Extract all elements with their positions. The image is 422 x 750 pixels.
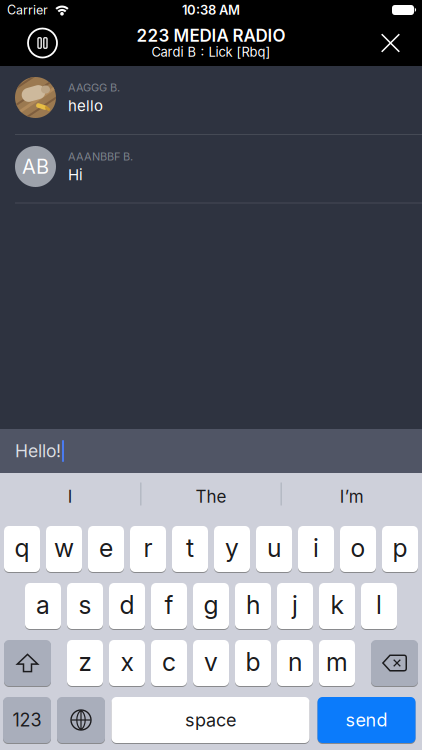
staticText: z [78,647,91,677]
staticText: I’m [340,486,364,507]
staticText: o [350,533,365,563]
button[interactable] [57,696,105,743]
staticText: e [99,533,113,563]
staticText: I [68,486,73,507]
button[interactable]: c [151,639,187,686]
button[interactable]: I [0,471,140,516]
button[interactable] [4,639,51,686]
button[interactable]: send [317,696,415,743]
staticText: Hi [68,166,83,184]
button[interactable]: t [172,525,208,572]
staticText: q [14,533,29,563]
button[interactable]: I’m [282,471,422,516]
button[interactable] [28,28,57,57]
button[interactable]: space [111,696,309,743]
staticText: w [54,533,74,563]
staticText: t [186,533,194,563]
button[interactable]: h [235,582,271,629]
button[interactable]: AB [0,135,422,187]
staticText: Hello! [15,441,61,461]
staticText: h [246,590,260,620]
button[interactable]: Hello! [0,429,422,473]
staticText: a [36,590,50,620]
staticText: c [162,647,176,677]
button[interactable]: w [46,525,82,572]
button[interactable]: d [109,582,145,629]
staticText: Cardi B : Lick [Rbq] [151,44,270,60]
staticText: AAANBBF B. [68,150,133,163]
button[interactable]: The [141,471,281,516]
button[interactable] [371,639,418,686]
button[interactable]: y [214,525,250,572]
button[interactable]: l [361,582,397,629]
staticText: v [204,647,218,677]
button[interactable]: z [67,639,103,686]
staticText: The [195,486,226,507]
button[interactable]: n [277,639,313,686]
button[interactable] [381,33,400,52]
button[interactable]: v [193,639,229,686]
staticText: i [313,533,319,563]
staticText: 123 [12,709,41,731]
button[interactable]: f [151,582,187,629]
staticText: g [203,590,218,620]
staticText: r [143,533,152,563]
button[interactable]: p [382,525,418,572]
staticText: y [225,533,239,563]
button[interactable]: i [298,525,334,572]
staticText: send [345,709,387,731]
staticText: j [292,590,298,620]
staticText: hello [68,97,103,115]
staticText: p [392,533,407,563]
staticText: AAGGG B. [68,81,120,94]
staticText: u [267,533,281,563]
button[interactable]: j [277,582,313,629]
staticText: s [78,590,91,620]
staticText: x [120,647,133,677]
button[interactable]: u [256,525,292,572]
button[interactable]: AAGGG B. [0,66,422,118]
staticText: n [288,647,302,677]
staticText: 223 MEDIA RADIO [136,25,285,46]
button[interactable]: e [88,525,124,572]
button[interactable]: x [109,639,145,686]
staticText: 10:38 AM [182,2,240,18]
staticText: AB [22,155,49,178]
staticText: Carrier [7,3,48,17]
button[interactable]: b [235,639,271,686]
button[interactable]: k [319,582,355,629]
staticText: space [185,709,236,731]
staticText: k [330,590,343,620]
button[interactable]: q [4,525,40,572]
button[interactable]: o [340,525,376,572]
staticText: l [376,590,382,620]
button[interactable]: m [319,639,355,686]
staticText: d [119,590,134,620]
staticText: b [245,647,260,677]
staticText: f [164,590,173,620]
button[interactable]: 123 [3,696,51,743]
button[interactable]: g [193,582,229,629]
button[interactable]: a [25,582,61,629]
button[interactable]: r [130,525,166,572]
button[interactable]: s [67,582,103,629]
staticText: m [326,647,348,677]
